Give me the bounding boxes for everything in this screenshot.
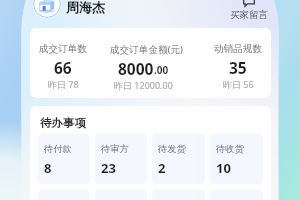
staticText: 买家留言: [230, 9, 268, 21]
staticText: 动销品规数: [214, 43, 262, 55]
staticText: 8000: [118, 58, 154, 79]
staticText: 待办事项: [40, 116, 86, 130]
staticText: 待收货: [216, 143, 244, 155]
staticText: 66: [54, 57, 72, 78]
staticText: .00: [154, 63, 169, 77]
staticText: 8: [44, 159, 52, 177]
staticText: 10: [216, 159, 231, 177]
button[interactable]: 成交订单金额(元): [110, 43, 183, 91]
staticText: 待审方: [101, 143, 129, 155]
staticText: 昨日 12000.00: [114, 79, 173, 91]
button[interactable]: 待付款: [38, 134, 90, 184]
button[interactable]: 待发货: [152, 134, 205, 184]
button[interactable]: 待收货: [210, 134, 263, 184]
button[interactable]: 动销品规数: [214, 43, 262, 90]
staticText: 2: [158, 159, 166, 177]
staticText: 35: [229, 57, 247, 78]
staticText: 成交订单金额(元): [110, 43, 183, 56]
staticText: 昨日 78: [48, 78, 79, 90]
staticText: 成交订单数: [39, 43, 87, 55]
staticText: 昨日 56: [223, 78, 254, 90]
button[interactable]: 买家留言: [230, 0, 268, 21]
staticText: 待付款: [44, 143, 72, 155]
staticText: 待发货: [158, 143, 186, 155]
button[interactable]: 待审方: [95, 134, 147, 184]
staticText: 周海杰: [66, 0, 105, 15]
staticText: 23: [101, 159, 116, 177]
button[interactable]: 成交订单数: [39, 43, 87, 90]
button[interactable]: Shop avatar: [33, 0, 61, 18]
